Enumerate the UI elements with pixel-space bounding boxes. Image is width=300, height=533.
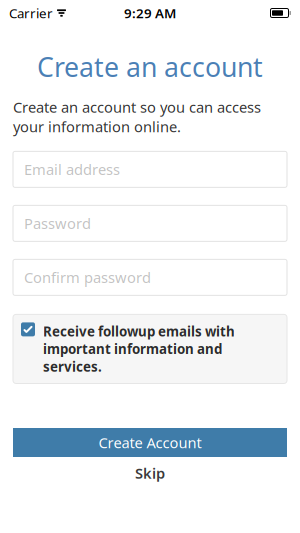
button[interactable]: Receive followup emails with important i… — [0, 314, 300, 383]
staticText: Carrier — [9, 4, 53, 22]
staticText: Create an account so you can access your… — [13, 97, 261, 136]
staticText: Email address — [24, 160, 120, 179]
staticText: 9:29 AM — [124, 4, 176, 22]
staticText: Password — [24, 214, 91, 233]
button[interactable]: Create Account — [13, 428, 287, 457]
button[interactable]: Skip — [13, 460, 287, 486]
staticText: Confirm password — [24, 268, 151, 287]
staticText: Skip — [135, 463, 165, 483]
staticText: Create an account — [37, 49, 263, 84]
staticText: Receive followup emails with important i… — [43, 322, 235, 375]
staticText: Create Account — [98, 433, 201, 452]
